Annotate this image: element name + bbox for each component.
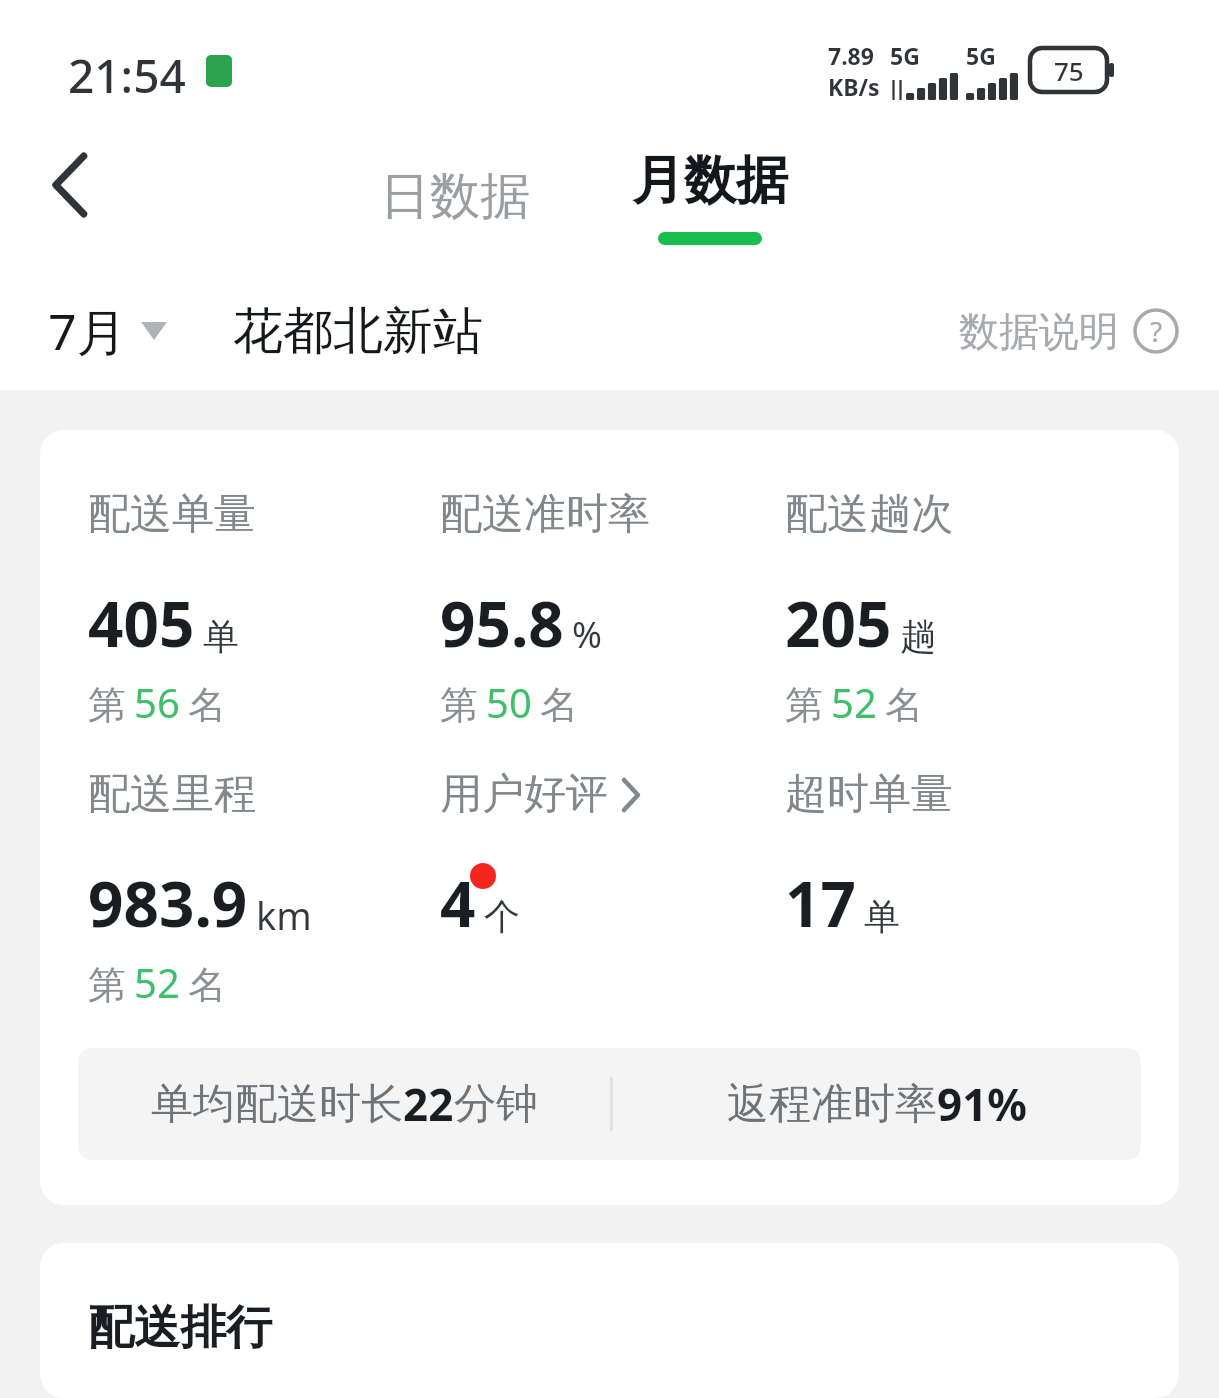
staticText: 返程准时率	[727, 1078, 937, 1131]
staticText: 50	[486, 675, 532, 729]
staticText: 52	[134, 955, 180, 1009]
staticText: 趟	[900, 614, 936, 659]
staticText: 单	[864, 894, 900, 939]
staticText: 名	[885, 681, 923, 729]
staticText: 第	[88, 961, 126, 1009]
button[interactable]: 配送里程	[88, 768, 428, 1009]
staticText: 95.8	[440, 581, 564, 665]
staticText: 第	[88, 681, 126, 729]
staticText: 配送准时率	[440, 488, 650, 541]
staticText: 配送趟次	[785, 488, 953, 541]
staticText: 第	[440, 681, 478, 729]
staticText: KB/s	[828, 71, 880, 100]
staticText: 5G	[966, 40, 996, 71]
button[interactable]: 配送准时率	[440, 488, 780, 729]
staticText: 21:54	[68, 44, 186, 107]
staticText: 名	[540, 681, 578, 729]
staticText: 数据说明	[959, 306, 1119, 356]
staticText: km	[256, 889, 312, 941]
staticText: 17	[785, 861, 856, 945]
staticText: %	[572, 610, 602, 659]
staticText: 第	[785, 681, 823, 729]
button[interactable]: 用户好评	[440, 768, 780, 945]
staticText: 单	[203, 614, 239, 659]
staticText: 单均配送时长	[151, 1078, 403, 1131]
button[interactable]: 日数据	[355, 148, 555, 244]
staticText: 7月	[48, 297, 127, 365]
staticText: 日数据	[380, 165, 530, 228]
staticText: 配送里程	[88, 768, 256, 821]
staticText: 名	[188, 681, 226, 729]
staticText: 91%	[937, 1074, 1028, 1134]
staticText: 205	[785, 581, 892, 665]
button[interactable]: Back	[26, 140, 116, 230]
button[interactable]: 单均配送时长	[78, 1048, 1141, 1160]
staticText: 7.89	[828, 40, 874, 71]
staticText: 月数据	[632, 148, 788, 214]
button[interactable]: 配送单量	[88, 488, 428, 729]
staticText: 用户好评	[440, 768, 608, 821]
staticText: 名	[188, 961, 226, 1009]
staticText: 983.9	[88, 861, 248, 945]
staticText: 配送单量	[88, 488, 256, 541]
staticText: 52	[831, 675, 877, 729]
staticText: ?	[1150, 312, 1163, 350]
staticText: 56	[134, 675, 180, 729]
staticText: 75	[1054, 53, 1084, 88]
staticText: 22	[403, 1074, 454, 1134]
staticText: 405	[88, 581, 195, 665]
staticText: 超时单量	[785, 768, 953, 821]
button[interactable]: 7月	[48, 297, 167, 365]
staticText: 分钟	[454, 1078, 538, 1131]
button[interactable]: 花都北新站	[233, 300, 483, 363]
staticText: 个	[484, 894, 520, 939]
button[interactable]: 超时单量	[785, 768, 1125, 945]
staticText: 5G	[890, 40, 920, 71]
button[interactable]: 配送趟次	[785, 488, 1125, 729]
staticText: 配送排行	[88, 1299, 272, 1357]
button[interactable]: 数据说明	[959, 306, 1179, 356]
staticText: 4	[440, 861, 476, 945]
button[interactable]: 月数据	[610, 148, 810, 268]
